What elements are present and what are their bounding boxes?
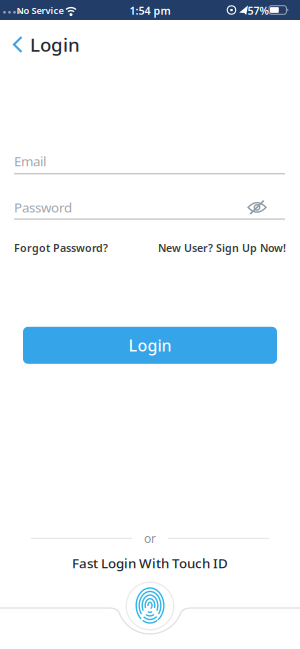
- staticText: 1:54 pm: [129, 3, 170, 18]
- button[interactable]: [246, 199, 268, 215]
- staticText: No Service: [16, 4, 63, 17]
- staticText: Login: [30, 32, 80, 57]
- button[interactable]: [12, 36, 24, 53]
- staticText: Forgot Password?: [14, 241, 108, 255]
- staticText: 57%: [247, 3, 268, 18]
- staticText: Fast Login With Touch ID: [72, 554, 228, 572]
- button[interactable]: [125, 581, 174, 630]
- staticText: Login: [128, 335, 171, 356]
- staticText: Email: [14, 152, 46, 170]
- button[interactable]: Forgot Password?: [14, 241, 108, 255]
- staticText: New User? Sign Up Now!: [158, 241, 286, 255]
- staticText: Password: [14, 198, 72, 216]
- staticText: or: [144, 530, 156, 546]
- button[interactable]: New User? Sign Up Now!: [158, 241, 286, 255]
- button[interactable]: Login: [23, 327, 277, 364]
